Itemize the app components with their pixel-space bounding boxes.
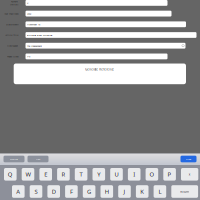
staticText: I [133,170,135,178]
button[interactable]: S [30,185,42,198]
button[interactable]: P [163,168,176,181]
button[interactable]: H [100,185,113,198]
button[interactable]: 2002 [25,11,171,16]
button[interactable]: November 15 [25,21,186,27]
staticText: Article Title [5,33,18,36]
staticText: Next [35,157,40,161]
staticText: W [25,170,30,178]
button[interactable]: W [22,168,34,181]
staticText: G [87,187,91,195]
button[interactable]: Generate Reference [14,63,186,84]
staticText: Generate Reference [85,68,114,71]
staticText: E [44,170,47,178]
staticText: D [52,187,56,195]
button[interactable]: x [181,168,198,181]
staticText: F [70,187,73,195]
button[interactable]: The Independent [25,43,185,49]
button[interactable]: J [118,185,131,198]
button[interactable]: Y [92,168,105,181]
button[interactable]: 7-8 [25,53,167,59]
button[interactable]: F [65,185,78,198]
staticText: T [80,170,83,178]
staticText: Year Published [4,12,18,15]
button[interactable]: T [75,168,87,181]
staticText: R [61,170,65,178]
button[interactable]: L [154,185,166,198]
button[interactable]: K [136,185,148,198]
staticText: S [34,187,37,195]
staticText: K [27,1,28,5]
staticText: Previous [10,157,18,161]
staticText: K [140,187,144,195]
staticText: Date/Month [6,23,18,26]
button[interactable]: D [47,185,60,198]
button[interactable]: R [57,168,70,181]
button[interactable]: U [110,168,123,181]
button[interactable]: A [12,185,25,198]
staticText: x [189,172,191,176]
button[interactable]: Previous [3,156,24,162]
staticText: H [105,187,109,195]
button[interactable]: Britain's Best Gripline [25,32,196,38]
staticText: A [16,187,20,195]
button[interactable]: G [83,185,95,198]
staticText: Pages Used [7,55,18,58]
staticText: 7-8 [27,55,30,58]
staticText: Y [97,170,100,178]
staticText: Newspaper [7,44,18,47]
staticText: U [114,170,118,178]
staticText: The Independent [27,44,42,47]
staticText: Done [186,157,191,161]
button[interactable]: Next [27,156,48,162]
button[interactable]: Done [180,156,196,162]
button[interactable]: O [146,168,158,181]
button[interactable]: Q [4,168,17,181]
staticText: L [158,187,161,195]
staticText: O [149,170,154,178]
staticText: Q [8,170,13,178]
staticText: J [123,187,125,195]
staticText: Author's Initials [10,0,18,6]
staticText: Britain's Best Gripline [27,33,52,37]
staticText: November 15 [27,23,40,26]
staticText: return [180,189,189,193]
button[interactable]: return [171,185,198,198]
staticText: 2002 [27,12,31,15]
button[interactable]: I [128,168,140,181]
button[interactable]: E [39,168,52,181]
button[interactable]: K [25,0,167,6]
staticText: P [168,170,172,178]
